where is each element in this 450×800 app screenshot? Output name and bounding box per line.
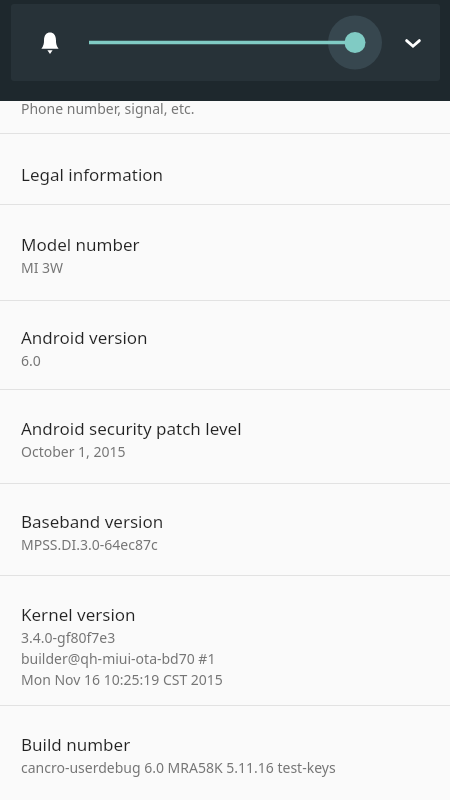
button[interactable]: Expand volume controls xyxy=(385,4,440,81)
button[interactable]: Ring volume xyxy=(11,4,89,81)
button[interactable]: Model number xyxy=(0,205,450,300)
staticText: Mon Nov 16 10:25:19 CST 2015 xyxy=(21,670,223,689)
button[interactable]: Legal information xyxy=(0,134,450,204)
button[interactable]: Phone number, signal, etc. xyxy=(0,0,450,133)
staticText: Model number xyxy=(21,233,140,256)
staticText: MI 3W xyxy=(21,258,64,277)
button[interactable]: Baseband version xyxy=(0,484,450,575)
button[interactable]: Android security patch level xyxy=(0,390,450,483)
button[interactable]: Build number xyxy=(0,706,450,800)
staticText: cancro-userdebug 6.0 MRA58K 5.11.16 test… xyxy=(21,758,336,777)
staticText: Android version xyxy=(21,326,148,349)
staticText: 3.4.0-gf80f7e3 xyxy=(21,628,116,647)
staticText: Build number xyxy=(21,733,131,756)
staticText: builder@qh-miui-ota-bd70 #1 xyxy=(21,649,216,668)
staticText: Android security patch level xyxy=(21,417,242,440)
staticText: Phone number, signal, etc. xyxy=(21,99,195,118)
button[interactable]: Kernel version xyxy=(0,576,450,705)
staticText: October 1, 2015 xyxy=(21,442,126,461)
button[interactable]: Volume slider xyxy=(89,4,385,81)
staticText: MPSS.DI.3.0-64ec87c xyxy=(21,535,158,554)
button[interactable]: Android version xyxy=(0,301,450,389)
staticText: Kernel version xyxy=(21,603,136,626)
staticText: 6.0 xyxy=(21,351,41,370)
staticText: Baseband version xyxy=(21,510,164,533)
staticText: Legal information xyxy=(21,163,164,186)
